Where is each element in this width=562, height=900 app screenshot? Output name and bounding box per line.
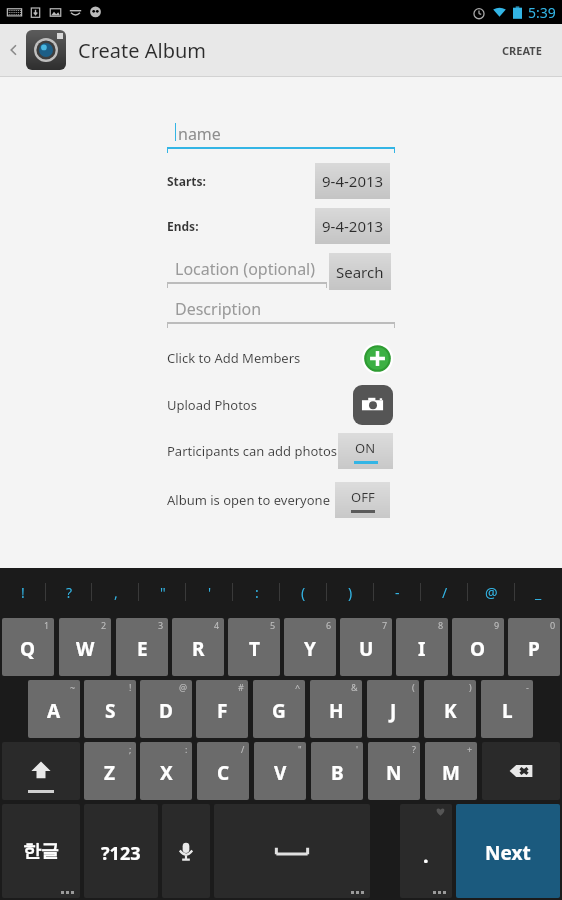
button[interactable]: Next bbox=[456, 804, 560, 898]
staticText: E bbox=[137, 636, 148, 662]
button[interactable]: P bbox=[508, 618, 560, 676]
staticText: ) bbox=[469, 681, 472, 693]
button[interactable]: ) bbox=[327, 568, 374, 616]
button[interactable]: 9-4-2013 bbox=[315, 208, 390, 244]
button[interactable]: name bbox=[167, 121, 395, 153]
button[interactable]: Search bbox=[329, 253, 391, 290]
button[interactable]: T bbox=[228, 618, 280, 676]
button[interactable]: : bbox=[233, 568, 280, 616]
staticText: ON bbox=[355, 439, 376, 457]
button[interactable]: A bbox=[28, 680, 80, 738]
button[interactable]: O bbox=[452, 618, 504, 676]
staticText: / bbox=[442, 583, 448, 602]
button[interactable]: 한글 bbox=[2, 804, 80, 898]
staticText: ? bbox=[66, 583, 73, 602]
staticText: V bbox=[274, 760, 287, 786]
button[interactable]: Description bbox=[167, 296, 395, 328]
button[interactable]: Upload photos bbox=[353, 385, 393, 425]
staticText: P bbox=[528, 636, 540, 662]
button[interactable]: - bbox=[374, 568, 421, 616]
button[interactable]: K bbox=[424, 680, 476, 738]
button[interactable]: M bbox=[425, 742, 477, 800]
staticText: Click to Add Members bbox=[167, 349, 301, 367]
staticText: : bbox=[255, 583, 259, 602]
staticText: Starts: bbox=[167, 173, 206, 189]
staticText: " bbox=[298, 743, 302, 755]
staticText: H bbox=[329, 698, 344, 724]
staticText: N bbox=[386, 760, 402, 786]
staticText: ' bbox=[208, 583, 212, 602]
button[interactable]: X bbox=[140, 742, 192, 800]
button[interactable]: Backspace bbox=[482, 742, 560, 800]
staticText: D bbox=[159, 698, 173, 724]
staticText: : bbox=[185, 743, 188, 755]
button[interactable]: W bbox=[59, 618, 111, 676]
button[interactable]: , bbox=[92, 568, 139, 616]
button[interactable]: Back bbox=[4, 40, 24, 60]
staticText: 0 bbox=[550, 619, 556, 631]
button[interactable]: OFF bbox=[335, 482, 390, 518]
staticText: 2 bbox=[101, 619, 107, 631]
button[interactable]: ?123 bbox=[84, 804, 158, 898]
button[interactable]: _ bbox=[515, 568, 562, 616]
staticText: Q bbox=[20, 636, 36, 662]
button[interactable]: H bbox=[310, 680, 362, 738]
button[interactable]: L bbox=[481, 680, 533, 738]
button[interactable]: . bbox=[400, 804, 452, 898]
button[interactable]: @ bbox=[468, 568, 515, 616]
button[interactable]: App icon bbox=[26, 30, 66, 70]
button[interactable]: ( bbox=[280, 568, 327, 616]
staticText: - bbox=[526, 681, 529, 693]
staticText: K bbox=[444, 698, 457, 724]
staticText: L bbox=[502, 698, 513, 724]
button[interactable]: Shift bbox=[2, 742, 80, 800]
button[interactable]: I bbox=[396, 618, 448, 676]
staticText: F bbox=[217, 698, 228, 724]
button[interactable]: U bbox=[340, 618, 392, 676]
staticText: Next bbox=[485, 840, 531, 866]
button[interactable]: V bbox=[254, 742, 306, 800]
button[interactable]: ? bbox=[46, 568, 92, 616]
staticText: Ends: bbox=[167, 218, 199, 234]
staticText: 7 bbox=[382, 619, 388, 631]
button[interactable]: C bbox=[197, 742, 249, 800]
button[interactable]: ' bbox=[186, 568, 233, 616]
button[interactable]: E bbox=[116, 618, 168, 676]
button[interactable]: Add members bbox=[361, 342, 394, 375]
staticText: - bbox=[395, 583, 400, 602]
staticText: " bbox=[160, 583, 166, 602]
button[interactable]: S bbox=[84, 680, 136, 738]
button[interactable]: 9-4-2013 bbox=[315, 163, 390, 199]
button[interactable]: Y bbox=[284, 618, 336, 676]
button[interactable]: D bbox=[140, 680, 192, 738]
button[interactable]: Q bbox=[2, 618, 54, 676]
button[interactable]: Location (optional) bbox=[167, 256, 327, 288]
button[interactable]: " bbox=[139, 568, 186, 616]
staticText: T bbox=[249, 636, 260, 662]
staticText: @ bbox=[485, 583, 498, 602]
staticText: Search bbox=[336, 262, 384, 282]
button[interactable]: N bbox=[368, 742, 420, 800]
staticText: M bbox=[442, 760, 460, 786]
button[interactable]: Space bbox=[214, 804, 370, 898]
button[interactable]: / bbox=[421, 568, 468, 616]
button[interactable]: B bbox=[311, 742, 363, 800]
button[interactable]: Z bbox=[84, 742, 136, 800]
staticText: _ bbox=[535, 583, 542, 602]
staticText: CREATE bbox=[502, 43, 542, 58]
button[interactable]: ON bbox=[338, 433, 393, 469]
button[interactable]: F bbox=[196, 680, 248, 738]
button[interactable]: ! bbox=[0, 568, 46, 616]
button[interactable]: R bbox=[172, 618, 224, 676]
staticText: 3 bbox=[158, 619, 164, 631]
button[interactable]: G bbox=[253, 680, 305, 738]
staticText: OFF bbox=[351, 488, 375, 506]
staticText: A bbox=[47, 698, 61, 724]
button[interactable]: CREATE bbox=[496, 37, 548, 64]
staticText: . bbox=[423, 842, 429, 869]
button[interactable]: Voice input bbox=[162, 804, 210, 898]
button[interactable]: J bbox=[367, 680, 419, 738]
staticText: Create Album bbox=[78, 37, 206, 64]
staticText: J bbox=[390, 698, 397, 724]
staticText: Y bbox=[304, 636, 316, 662]
